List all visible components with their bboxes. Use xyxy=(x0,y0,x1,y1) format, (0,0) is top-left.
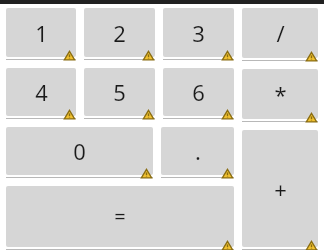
staticText: . xyxy=(195,136,201,166)
button[interactable]: 3 xyxy=(163,8,234,60)
staticText: 0 xyxy=(73,136,86,166)
staticText: / xyxy=(276,18,285,48)
staticText: 5 xyxy=(113,77,126,107)
button[interactable]: / xyxy=(242,8,318,61)
staticText: = xyxy=(114,203,126,230)
staticText: 3 xyxy=(192,18,205,48)
button[interactable]: . xyxy=(161,127,234,178)
button[interactable]: = xyxy=(6,186,234,250)
button[interactable]: 6 xyxy=(163,68,234,119)
staticText: 6 xyxy=(192,77,205,107)
staticText: 2 xyxy=(113,18,126,48)
staticText: + xyxy=(274,174,287,204)
button[interactable]: * xyxy=(242,69,318,122)
button[interactable]: 1 xyxy=(6,8,76,60)
button[interactable]: 0 xyxy=(6,127,153,178)
button[interactable]: 4 xyxy=(6,68,76,119)
button[interactable]: + xyxy=(242,130,318,250)
staticText: * xyxy=(274,79,287,109)
button[interactable]: 2 xyxy=(84,8,155,60)
staticText: 4 xyxy=(35,77,48,107)
button[interactable]: 5 xyxy=(84,68,155,119)
staticText: 1 xyxy=(35,18,48,48)
